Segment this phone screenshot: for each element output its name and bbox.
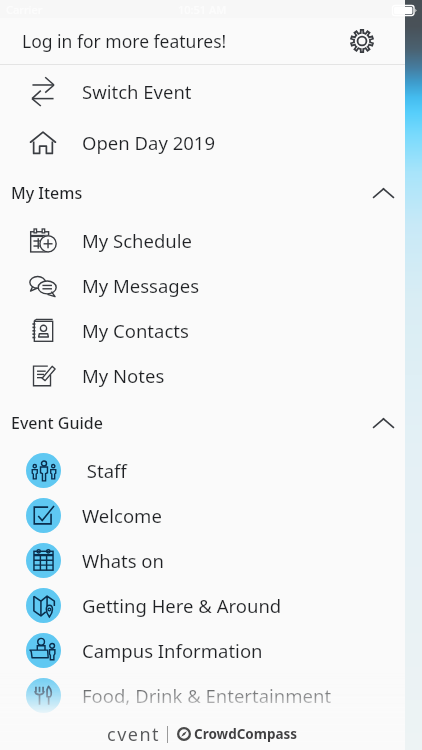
button[interactable]: Settings — [339, 18, 385, 64]
staticText: cvent — [107, 722, 161, 747]
button[interactable]: Getting Here & Around — [0, 583, 405, 628]
button[interactable]: Campus Information — [0, 628, 405, 673]
staticText: Staff — [82, 458, 127, 483]
staticText: Campus Information — [82, 638, 263, 663]
staticText: My Items — [11, 182, 363, 204]
staticText: Food, Drink & Entertainment — [82, 683, 332, 708]
button[interactable]: Welcome — [0, 493, 405, 538]
staticText: My Schedule — [82, 228, 192, 253]
staticText: Log in for more features! — [22, 29, 339, 53]
staticText: Getting Here & Around — [82, 593, 282, 618]
staticText: My Contacts — [82, 318, 189, 343]
button[interactable]: Open Day 2019 — [0, 117, 405, 168]
staticText: Open Day 2019 — [82, 130, 215, 155]
staticText: Whats on — [82, 548, 164, 573]
button[interactable]: Staff — [0, 448, 405, 493]
staticText: My Notes — [82, 363, 165, 388]
button[interactable]: Whats on — [0, 538, 405, 583]
button[interactable]: My Contacts — [0, 308, 405, 353]
staticText: My Messages — [82, 273, 200, 298]
button[interactable]: Switch Event — [0, 65, 405, 117]
button[interactable]: My Items — [0, 168, 405, 218]
staticText: CrowdCompass — [194, 725, 298, 743]
staticText: Welcome — [82, 503, 162, 528]
button[interactable]: My Schedule — [0, 218, 405, 263]
staticText: Switch Event — [82, 79, 192, 104]
button[interactable]: My Messages — [0, 263, 405, 308]
button[interactable]: Food, Drink & Entertainment — [0, 673, 405, 718]
button[interactable]: Event Guide — [0, 398, 405, 448]
button[interactable]: My Notes — [0, 353, 405, 398]
staticText: Event Guide — [11, 412, 363, 434]
